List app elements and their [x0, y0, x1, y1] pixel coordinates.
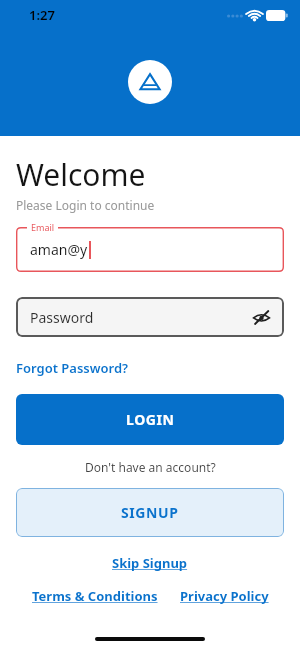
- button[interactable]: Forgot Password?: [16, 359, 129, 377]
- staticText: Privacy Policy: [180, 587, 269, 605]
- staticText: LOGIN: [126, 410, 175, 429]
- staticText: Please Login to continue: [16, 197, 155, 213]
- staticText: Don't have an account?: [85, 459, 216, 475]
- button[interactable]: Show password: [250, 306, 272, 328]
- staticText: Skip Signup: [112, 554, 188, 572]
- staticText: aman@y: [30, 240, 88, 259]
- button[interactable]: SIGNUP: [16, 488, 284, 537]
- staticText: 1:27: [29, 6, 55, 24]
- staticText: Forgot Password?: [16, 359, 129, 377]
- staticText: Email: [31, 221, 55, 233]
- staticText: Password: [30, 308, 94, 327]
- staticText: SIGNUP: [121, 503, 179, 522]
- staticText: Terms & Conditions: [32, 587, 158, 605]
- button[interactable]: Email: [16, 227, 284, 272]
- button[interactable]: LOGIN: [16, 394, 284, 445]
- button[interactable]: Skip Signup: [112, 554, 188, 572]
- staticText: Welcome: [16, 154, 146, 195]
- button[interactable]: Password: [16, 297, 284, 337]
- button[interactable]: Privacy Policy: [180, 587, 269, 605]
- button[interactable]: Terms & Conditions: [32, 587, 158, 605]
